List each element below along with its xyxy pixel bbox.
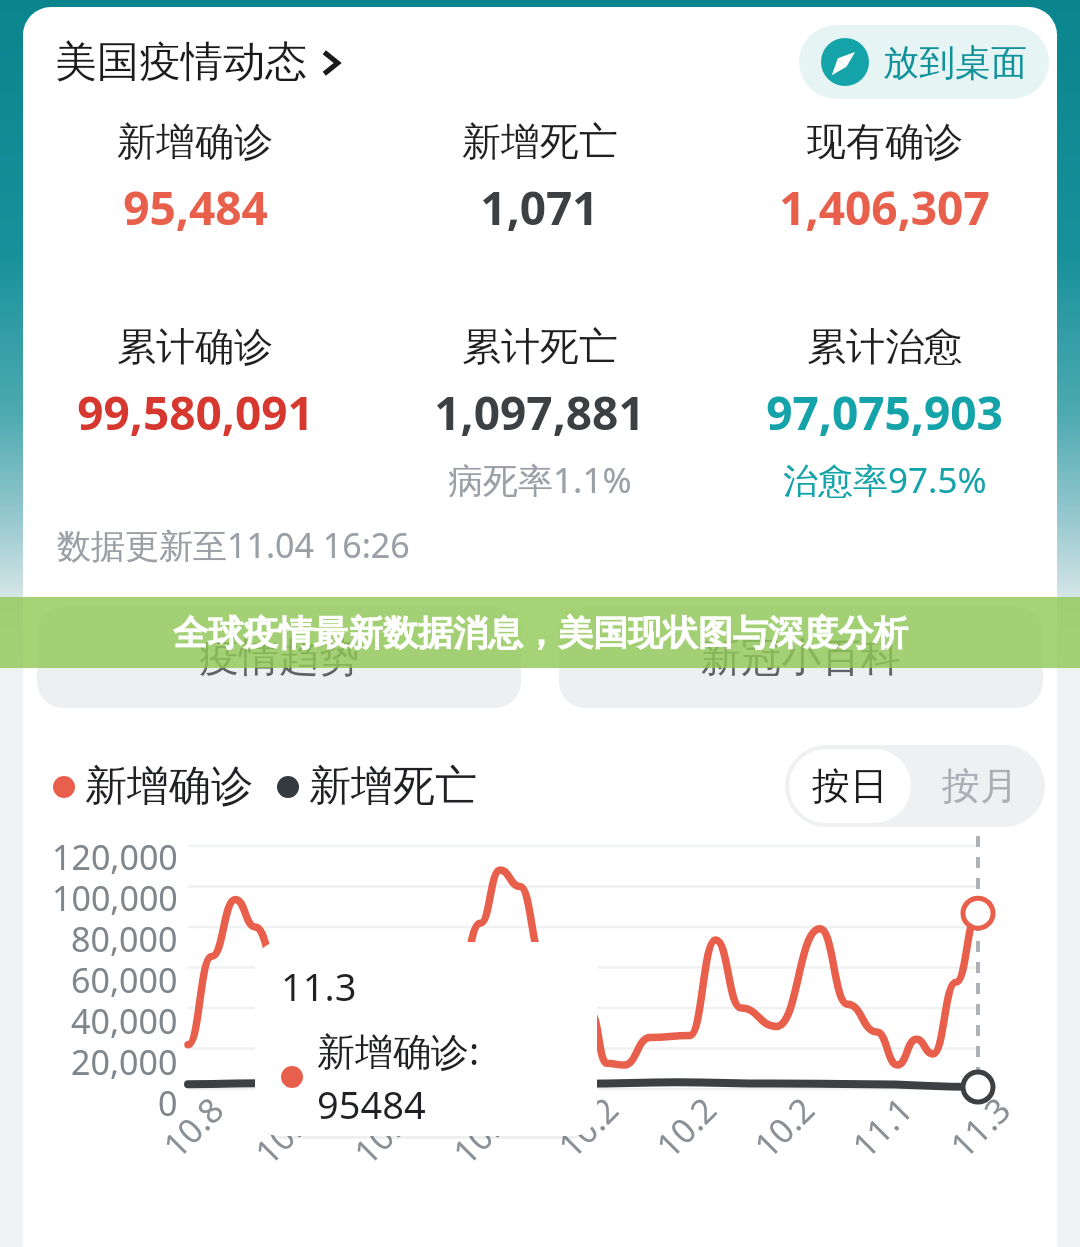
staticText: 新增死亡 (462, 117, 618, 166)
staticText: 1,406,307 (779, 176, 990, 239)
staticText: 新增确诊: 95484 (317, 1024, 597, 1130)
staticText: 0 (158, 1080, 178, 1121)
button[interactable]: 累计死亡 (367, 322, 712, 504)
staticText: 10.14 (343, 1080, 437, 1174)
staticText: 累计死亡 (462, 322, 618, 371)
staticText: 累计确诊 (117, 322, 273, 371)
staticText: 数据更新至11.04 16:26 (57, 522, 410, 568)
button[interactable]: 放到桌面 (799, 25, 1049, 99)
staticText: 疫情趋势 (199, 632, 359, 682)
staticText: 10.2 (744, 1087, 824, 1167)
button[interactable]: 按月 (915, 745, 1045, 827)
staticText: 累计治愈 (807, 322, 963, 371)
staticText: 11.1 (842, 1087, 922, 1167)
staticText: 100,000 (52, 875, 178, 916)
button[interactable]: 新增确诊 (23, 117, 367, 292)
staticText: 现有确诊 (807, 117, 963, 166)
staticText: 40,000 (71, 998, 178, 1039)
staticText: 80,000 (71, 916, 178, 957)
staticText: 放到桌面 (883, 40, 1027, 85)
staticText: 10.8 (153, 1087, 233, 1167)
staticText: 新增确诊 (117, 117, 273, 166)
button[interactable]: 疫情趋势 (37, 606, 521, 708)
button[interactable]: 按日 (789, 749, 911, 823)
staticText: 97,075,903 (766, 381, 1003, 444)
button[interactable]: 新增死亡 (367, 117, 712, 292)
button[interactable]: 累计治愈 (712, 322, 1057, 504)
staticText: 20,000 (71, 1039, 178, 1080)
button[interactable]: 新冠小百科 (559, 606, 1043, 708)
staticText: 治愈率97.5% (783, 456, 987, 504)
staticText: 新增确诊 (85, 760, 253, 813)
staticText: 按月 (942, 762, 1018, 810)
staticText: 11.3 (281, 960, 357, 1012)
staticText: 新增死亡 (309, 760, 477, 813)
staticText: 99,580,091 (77, 381, 314, 444)
staticText: 10.2 (548, 1087, 628, 1167)
staticText: 120,000 (52, 834, 178, 875)
staticText: 1,097,881 (434, 381, 645, 444)
staticText: 10.2 (646, 1087, 726, 1167)
staticText: 11.3 (940, 1087, 1020, 1167)
staticText: 1,071 (480, 176, 599, 239)
staticText: 10.11 (244, 1080, 338, 1174)
button[interactable]: 累计确诊 (23, 322, 367, 497)
staticText: 病死率1.1% (448, 456, 632, 504)
staticText: 按日 (812, 762, 888, 810)
other: 放到桌面 (821, 38, 869, 86)
button[interactable]: 美国疫情动态 (55, 36, 343, 89)
staticText: 全球疫情最新数据消息，美国现状图与深度分析 (173, 611, 908, 655)
button[interactable]: 现有确诊 (712, 117, 1057, 292)
staticText: 美国疫情动态 (55, 36, 307, 89)
staticText: 新冠小百科 (701, 632, 901, 682)
staticText: 95,484 (123, 176, 268, 239)
staticText: 60,000 (71, 957, 178, 998)
staticText: 10.17 (442, 1080, 536, 1174)
